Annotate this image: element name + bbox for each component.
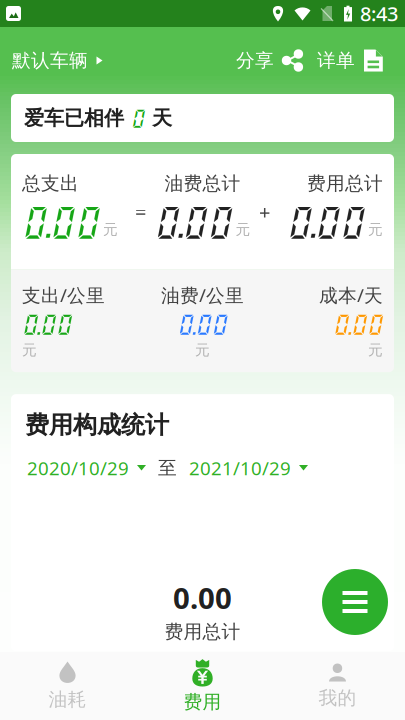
staticText: + — [259, 198, 270, 225]
staticText: 0 — [131, 107, 145, 129]
staticText: 油费总计 — [164, 172, 240, 195]
staticText: 0.00 — [22, 311, 72, 337]
staticText: 天 — [152, 106, 172, 130]
staticText: 详单 — [317, 49, 355, 72]
staticText: 0.00 — [22, 202, 100, 241]
staticText: 0.00 — [154, 202, 232, 241]
staticText: 元 — [368, 341, 383, 359]
staticText: 0.00 — [287, 202, 365, 241]
staticText: 默认车辆 — [12, 49, 88, 72]
staticText: 油耗 — [48, 688, 86, 711]
staticText: 0.00 — [173, 578, 232, 617]
staticText: 8:43 — [360, 0, 398, 27]
button[interactable]: 2021/10/29 — [189, 456, 308, 480]
staticText: 元 — [368, 220, 383, 238]
staticText: 费用总计 — [307, 172, 383, 195]
button[interactable]: 默认车辆 — [0, 27, 113, 94]
staticText: 费用 — [183, 690, 221, 713]
staticText: 0.00 — [333, 311, 383, 337]
staticText: 元 — [22, 341, 37, 359]
staticText: = — [135, 198, 146, 225]
staticText: 费用构成统计 — [25, 410, 169, 440]
staticText: 元 — [235, 220, 250, 238]
staticText: 油费/公里 — [161, 282, 244, 307]
staticText: 爱车已相伴 — [24, 106, 124, 130]
staticText: 0.00 — [177, 311, 227, 337]
staticText: 费用总计 — [164, 620, 240, 643]
staticText: 支出/公里 — [22, 282, 105, 307]
button[interactable]: 详单 — [305, 27, 405, 94]
staticText: 2020/10/29 — [27, 456, 129, 480]
button[interactable]: 分享 — [228, 27, 305, 94]
button[interactable]: 2020/10/29 — [27, 456, 146, 480]
staticText: 元 — [103, 220, 118, 238]
staticText: 我的 — [318, 686, 356, 709]
staticText: 至 — [158, 457, 177, 479]
staticText: 总支出 — [22, 172, 79, 195]
staticText: 成本/天 — [319, 282, 383, 307]
button[interactable]: 费用 — [135, 652, 270, 720]
staticText: 元 — [195, 341, 210, 359]
button[interactable]: Menu — [322, 569, 388, 635]
staticText: 分享 — [236, 49, 274, 72]
button[interactable]: 我的 — [270, 652, 405, 720]
button[interactable]: 油耗 — [0, 652, 135, 720]
staticText: 2021/10/29 — [189, 456, 291, 480]
